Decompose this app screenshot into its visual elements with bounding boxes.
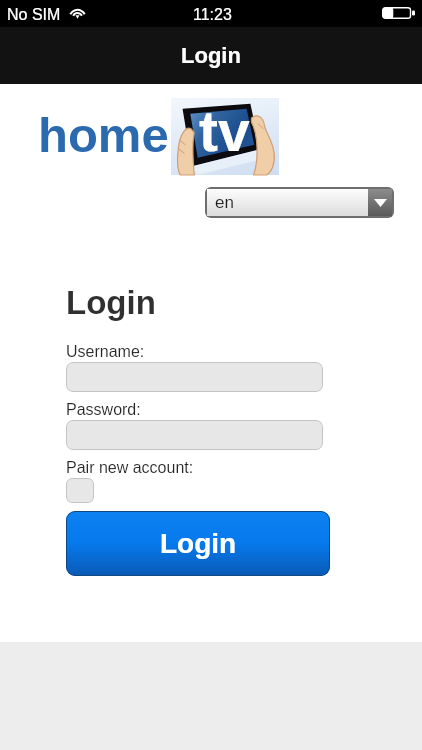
staticText: tv bbox=[199, 99, 250, 163]
button[interactable]: Select language bbox=[205, 187, 394, 218]
staticText: Password: bbox=[66, 401, 141, 419]
staticText: No SIM bbox=[7, 6, 61, 24]
staticText: en bbox=[215, 193, 234, 212]
button[interactable]: Pair new account checkbox bbox=[66, 478, 94, 503]
button[interactable]: Login bbox=[66, 511, 330, 576]
button[interactable] bbox=[66, 420, 323, 450]
button[interactable] bbox=[66, 362, 323, 392]
staticText: Login bbox=[66, 284, 156, 321]
staticText: home bbox=[38, 108, 169, 163]
staticText: Username: bbox=[66, 343, 145, 361]
staticText: Pair new account: bbox=[66, 459, 194, 477]
staticText: Login bbox=[181, 43, 241, 68]
staticText: 11:23 bbox=[193, 6, 232, 24]
staticText: Login bbox=[160, 528, 237, 559]
